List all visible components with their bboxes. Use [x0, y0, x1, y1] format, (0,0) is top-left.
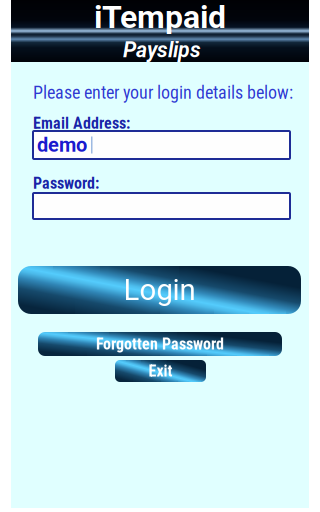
staticText: Payslips [123, 37, 201, 62]
button[interactable] [33, 193, 290, 219]
button[interactable]: Login [18, 266, 301, 314]
staticText: iTempaid [94, 0, 226, 36]
staticText: Email Address: [33, 114, 130, 133]
staticText: Please enter your login details below: [33, 82, 293, 103]
staticText: Password: [33, 174, 99, 193]
staticText: demo [37, 133, 87, 157]
staticText: Forgotten Password [96, 335, 224, 353]
button[interactable]: Exit [115, 360, 206, 382]
button[interactable]: demo [33, 131, 290, 159]
staticText: Login [123, 273, 195, 307]
button[interactable]: Forgotten Password [38, 332, 282, 356]
staticText: Exit [148, 362, 172, 380]
